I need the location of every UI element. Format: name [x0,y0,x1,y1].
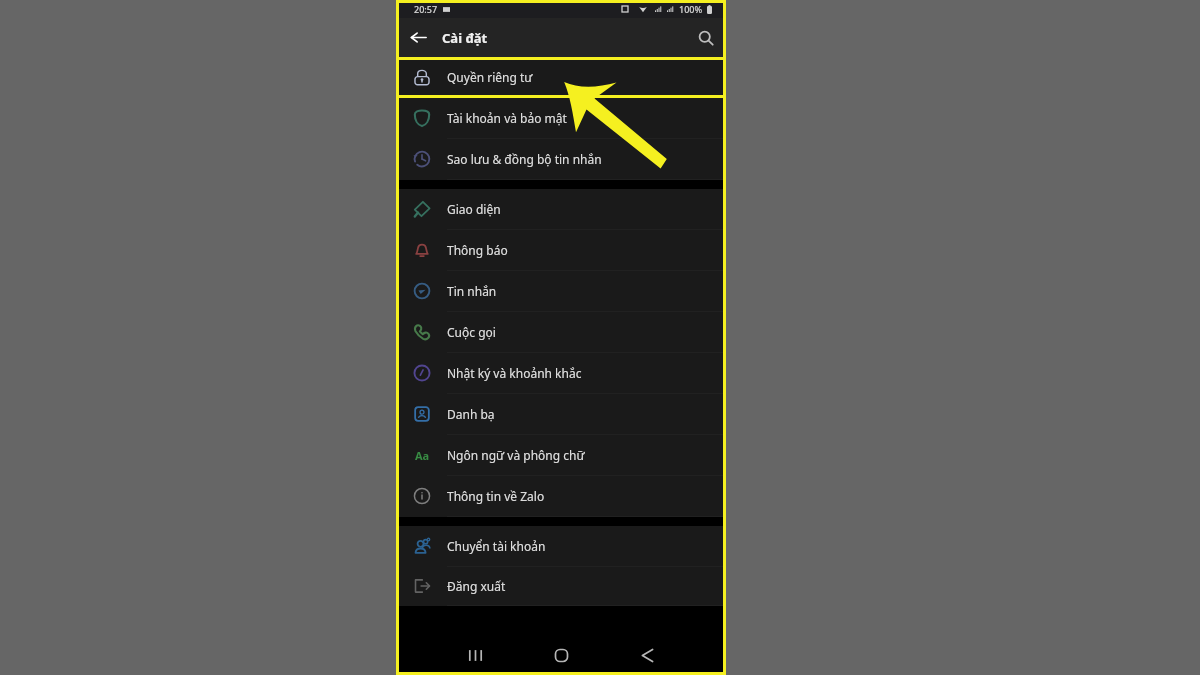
staticText: Sao lưu & đồng bộ tin nhắn [447,151,602,167]
button[interactable]: Đăng xuất [396,567,726,606]
button[interactable]: Sao lưu & đồng bộ tin nhắn [396,139,726,180]
button[interactable]: Search [686,18,726,57]
staticText: Chuyển tài khoản [447,538,546,554]
button[interactable]: Nhật ký và khoảnh khắc [396,353,726,394]
staticText: Ngôn ngữ và phông chữ [447,447,585,463]
staticText: 20:57 [414,3,438,15]
button[interactable]: Back [616,638,678,672]
staticText: Cài đặt [442,29,488,47]
button[interactable]: Chuyển tài khoản [396,526,726,567]
staticText: Đăng xuất [447,578,506,594]
button[interactable]: Aa [396,435,726,476]
button[interactable]: Tài khoản và bảo mật [396,98,726,139]
button[interactable]: Quyền riêng tư [396,57,726,98]
staticText: Tài khoản và bảo mật [447,110,567,126]
staticText: Thông tin về Zalo [447,488,545,504]
staticText: Nhật ký và khoảnh khắc [447,365,582,381]
button[interactable]: Tin nhắn [396,271,726,312]
staticText: 100% [679,3,703,15]
staticText: Aa [415,448,430,463]
button[interactable]: Recents [444,638,506,672]
staticText: Cuộc gọi [447,324,496,340]
button[interactable]: Home [530,638,592,672]
button[interactable]: Back [396,18,440,57]
button[interactable]: Giao diện [396,189,726,230]
staticText: Giao diện [447,201,501,217]
button[interactable]: Thông tin về Zalo [396,476,726,517]
staticText: Tin nhắn [447,283,497,299]
staticText: Quyền riêng tư [447,69,533,85]
staticText: Danh bạ [447,406,495,422]
button[interactable]: Danh bạ [396,394,726,435]
staticText: Thông báo [447,242,508,258]
button[interactable]: Thông báo [396,230,726,271]
button[interactable]: Cuộc gọi [396,312,726,353]
